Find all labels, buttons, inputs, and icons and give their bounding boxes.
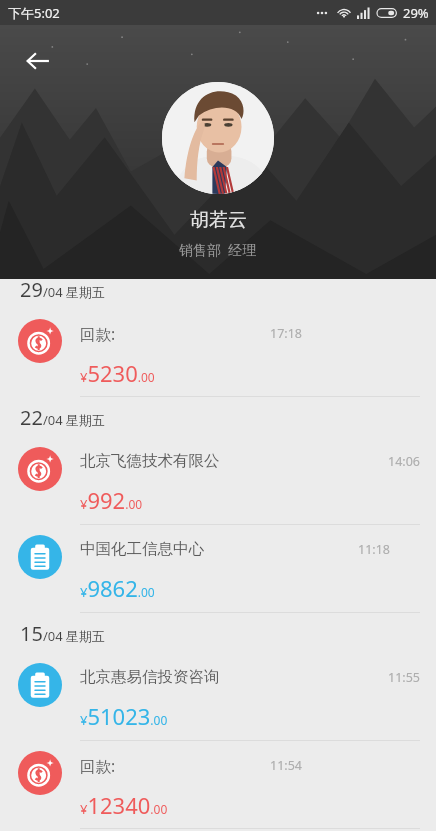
- staticText: 中国化工信息中心: [80, 539, 204, 559]
- staticText: 北京飞德技术有限公司 回款:: [80, 451, 234, 471]
- staticText: 胡若云: [190, 208, 247, 232]
- staticText: 22/04 星期五: [20, 404, 105, 431]
- staticText: ¥992.00: [80, 485, 143, 515]
- staticText: 29/04 星期五: [20, 276, 105, 303]
- staticText: 11:18: [358, 541, 390, 558]
- staticText: ¥51023.00: [80, 701, 168, 731]
- staticText: ¥12340.00: [80, 790, 168, 820]
- staticText: 北京惠易信投资咨询有限公司: [80, 667, 234, 687]
- staticText: 11:55: [388, 669, 420, 686]
- button[interactable]: Profile photo: [162, 82, 274, 194]
- staticText: 17:18: [270, 325, 302, 342]
- button[interactable]: 回款:: [0, 309, 436, 397]
- staticText: 14:06: [388, 453, 420, 470]
- staticText: ¥5230.00: [80, 358, 155, 388]
- button[interactable]: 北京惠易信投资咨询有限公司: [0, 653, 436, 741]
- staticText: 回款:: [80, 323, 116, 344]
- staticText: 29%: [403, 4, 429, 22]
- button[interactable]: 中国化工信息中心: [0, 525, 436, 613]
- button[interactable]: 北京飞德技术有限公司 回款:: [0, 437, 436, 525]
- staticText: 销售部 经理: [179, 240, 257, 259]
- staticText: 下午5:02: [8, 4, 60, 22]
- staticText: 15/04 星期五: [20, 620, 105, 647]
- staticText: ¥9862.00: [80, 573, 155, 603]
- button[interactable]: 回款:: [0, 741, 436, 829]
- staticText: 回款:: [80, 755, 116, 776]
- staticText: 11:54: [270, 757, 302, 774]
- button[interactable]: Back: [16, 39, 60, 83]
